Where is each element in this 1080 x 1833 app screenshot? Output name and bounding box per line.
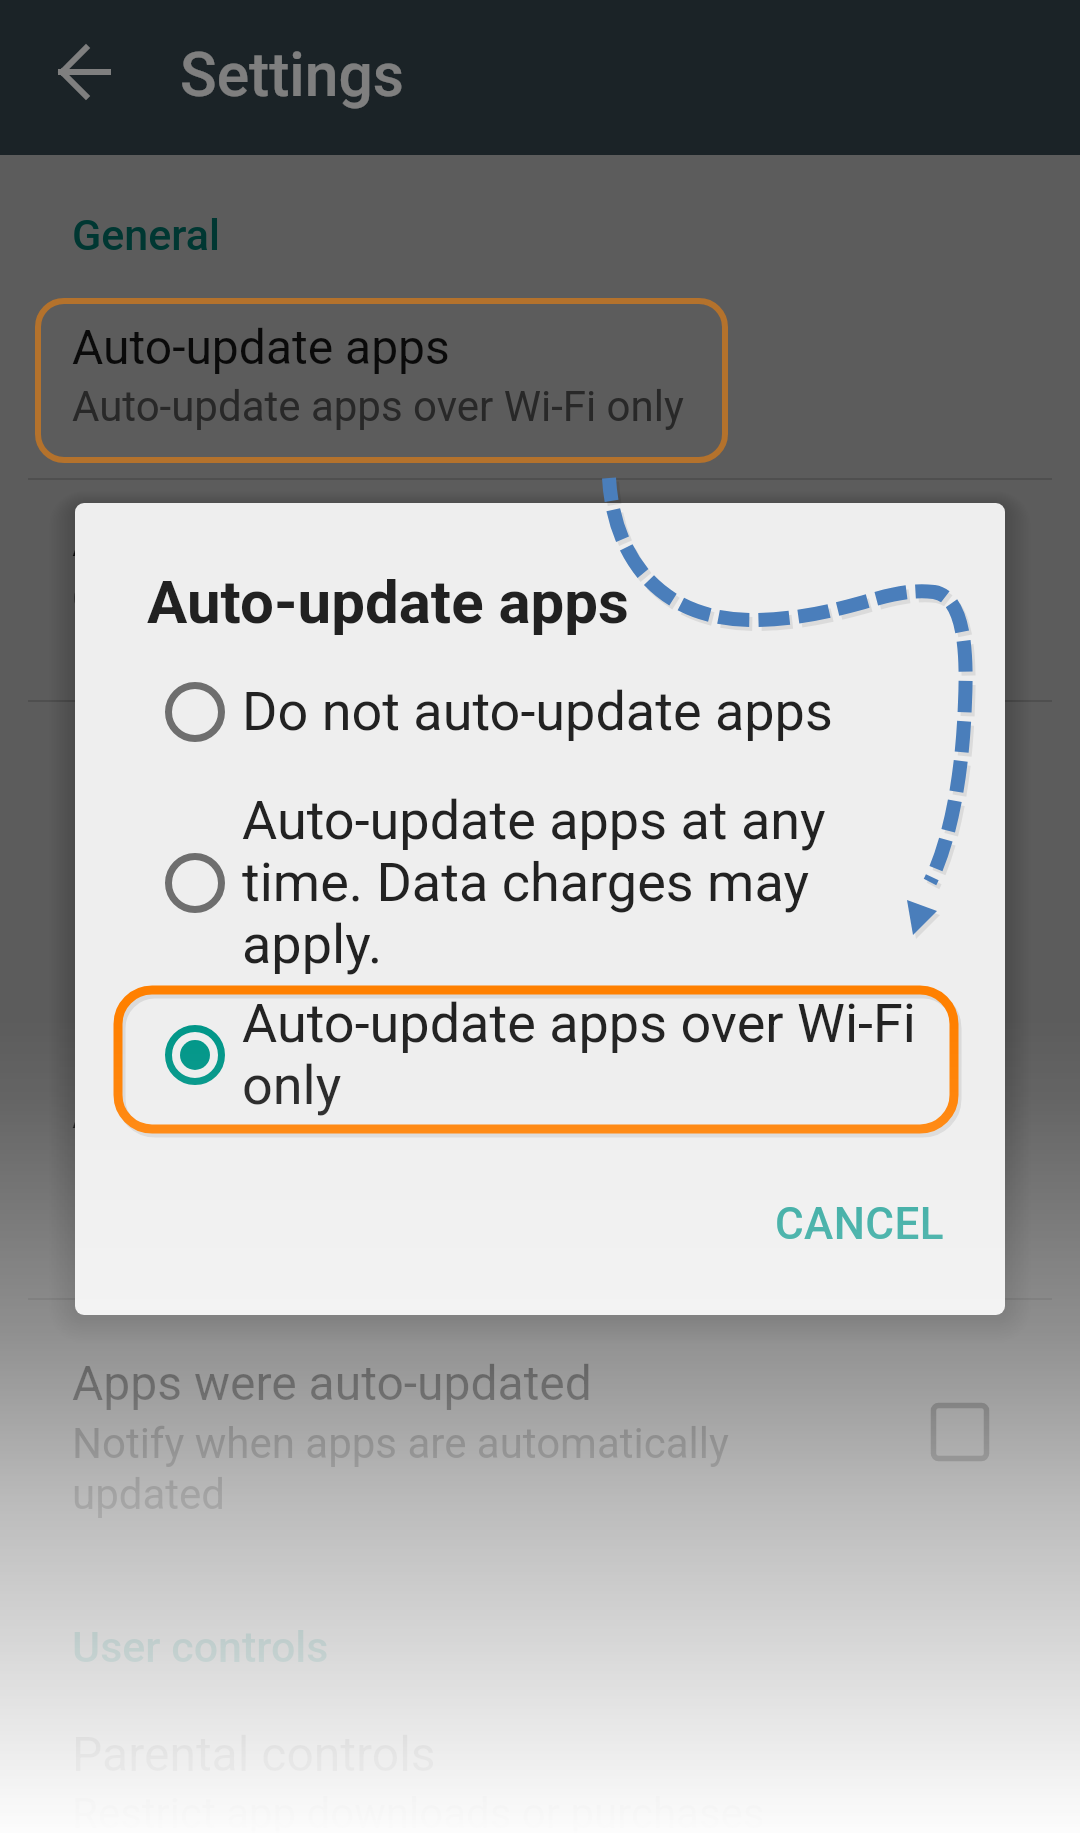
staticText: User controls	[72, 1622, 329, 1672]
button[interactable]: Notify when apps are auto-updated	[931, 1403, 989, 1461]
staticText: Auto-update apps at any time. Data charg…	[242, 790, 932, 976]
staticText: Notify me when apps auto-update	[72, 1146, 702, 1195]
staticText: Auto-update apps	[147, 567, 629, 637]
button[interactable]: Auto-update apps over Wi-Fi only	[95, 950, 985, 1160]
staticText: Do not auto-update apps	[242, 681, 932, 743]
staticText: Auto-update apps over Wi-Fi only	[72, 382, 684, 431]
staticText: Over any network	[72, 574, 395, 623]
button[interactable]	[0, 1700, 1080, 1833]
button[interactable]: CANCEL	[747, 1176, 972, 1272]
button[interactable]: Back	[0, 0, 142, 155]
staticText: Apps were auto-updated	[72, 1355, 592, 1411]
staticText: General	[72, 210, 220, 260]
staticText: CANCEL	[775, 1198, 944, 1250]
staticText: Settings	[180, 40, 404, 111]
staticText: Notify me when updates are available	[72, 929, 771, 978]
staticText: Auto-update apps	[72, 1083, 450, 1139]
button[interactable]	[0, 296, 1080, 462]
staticText: App download preference	[72, 511, 619, 567]
button[interactable]	[0, 490, 1080, 650]
staticText: Auto-update apps over Wi-Fi only	[242, 993, 932, 1117]
button[interactable]: Auto-update apps at any time. Data charg…	[95, 778, 985, 988]
staticText: Notifications	[72, 762, 319, 812]
button[interactable]	[0, 840, 1080, 1000]
button[interactable]: Do not auto-update apps	[95, 607, 985, 817]
staticText: Updates available	[72, 866, 450, 922]
staticText: Auto-update apps	[72, 319, 450, 375]
staticText: Parental controls	[72, 1726, 436, 1782]
button[interactable]	[0, 1330, 1080, 1545]
button[interactable]	[0, 1050, 1080, 1215]
staticText: Notify when apps are automatically updat…	[72, 1419, 729, 1520]
